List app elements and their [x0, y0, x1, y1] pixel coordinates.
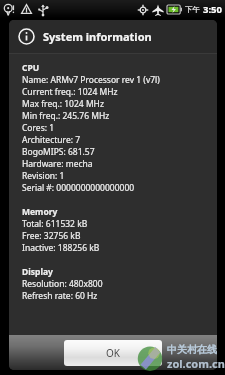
button[interactable]: OK	[64, 340, 162, 366]
staticText: Architecture: 7	[22, 134, 81, 146]
staticText: Serial #: 0000000000000000	[22, 182, 135, 194]
staticText: 中关村在线	[167, 343, 217, 356]
staticText: Hardware: mecha	[22, 158, 93, 170]
staticText: Memory	[22, 206, 58, 218]
staticText: 3:50	[203, 3, 222, 16]
staticText: CPU	[22, 62, 40, 74]
staticText: Resolution: 480x800	[22, 278, 103, 290]
staticText: System information	[43, 29, 152, 44]
staticText: Cores: 1	[22, 122, 55, 134]
staticText: Max freq.: 1024 MHz	[22, 98, 104, 110]
staticText: zol.com.cn	[167, 356, 225, 371]
staticText: OK	[106, 346, 120, 360]
staticText: Refresh rate: 60 Hz	[22, 290, 98, 302]
staticText: Name: ARMv7 Processor rev 1 (v7l)	[22, 74, 160, 86]
staticText: 下午	[185, 5, 200, 14]
staticText: Free: 32756 kB	[22, 230, 81, 242]
staticText: Display	[22, 266, 53, 278]
staticText: BogoMIPS: 681.57	[22, 146, 95, 158]
staticText: Current freq.: 1024 MHz	[22, 86, 118, 98]
staticText: Revision: 1	[22, 170, 65, 182]
staticText: Total: 611532 kB	[22, 218, 88, 230]
staticText: Inactive: 188256 kB	[22, 242, 100, 254]
staticText: Min freq.: 245.76 MHz	[22, 110, 110, 122]
